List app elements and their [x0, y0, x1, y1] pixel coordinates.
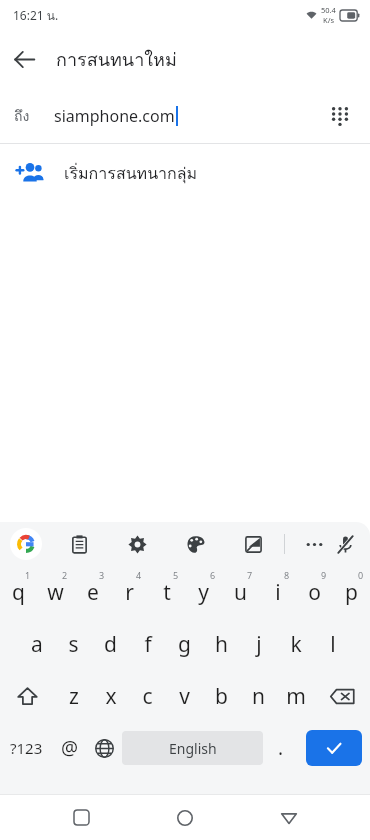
button[interactable]: g [166, 618, 203, 670]
button[interactable]: . [263, 722, 298, 774]
staticText: x [105, 682, 117, 711]
button[interactable]: n [240, 670, 277, 722]
staticText: t [163, 578, 171, 607]
button[interactable]: p [333, 566, 370, 618]
staticText: 2 [62, 569, 68, 581]
button[interactable]: Home [162, 795, 208, 840]
staticText: siamphone.com [54, 105, 175, 127]
staticText: n [252, 682, 265, 711]
staticText: m [286, 682, 306, 711]
button[interactable]: Clipboard [64, 529, 94, 559]
button[interactable]: v [166, 670, 203, 722]
button[interactable]: a [18, 618, 55, 670]
button[interactable]: t [148, 566, 185, 618]
staticText: u [234, 578, 247, 607]
button[interactable]: k [277, 618, 314, 670]
button[interactable]: e [74, 566, 111, 618]
button[interactable]: @ [52, 722, 87, 774]
staticText: v [179, 682, 190, 711]
button[interactable]: i [259, 566, 296, 618]
staticText: a [31, 630, 43, 659]
button[interactable]: Done [306, 730, 362, 766]
staticText: o [308, 578, 321, 607]
staticText: f [144, 630, 152, 659]
staticText: e [87, 578, 99, 607]
staticText: ถึง [14, 105, 30, 127]
button[interactable]: s [55, 618, 92, 670]
staticText: 3 [99, 569, 105, 581]
staticText: 5 [173, 569, 179, 581]
staticText: ?123 [10, 738, 43, 758]
staticText: 4 [136, 569, 142, 581]
staticText: l [330, 630, 336, 659]
staticText: s [68, 630, 79, 659]
button[interactable]: b [203, 670, 240, 722]
staticText: . [278, 735, 284, 761]
staticText: K/s [323, 15, 335, 25]
staticText: h [215, 630, 228, 659]
staticText: y [198, 578, 209, 607]
button[interactable]: h [203, 618, 240, 670]
button[interactable]: d [92, 618, 129, 670]
button[interactable]: Recent apps [58, 795, 104, 840]
button[interactable]: o [296, 566, 333, 618]
button[interactable]: q [0, 566, 37, 618]
staticText: z [69, 682, 79, 711]
staticText: j [256, 630, 262, 659]
button[interactable]: Change language [87, 722, 122, 774]
button[interactable]: j [240, 618, 277, 670]
button[interactable]: w [37, 566, 74, 618]
staticText: 50.4 [321, 5, 336, 15]
button[interactable]: เริ่มการสนทนากลุ่ม [0, 144, 370, 202]
button[interactable]: Shift [0, 670, 55, 722]
button[interactable]: y [185, 566, 222, 618]
button[interactable]: z [55, 670, 92, 722]
staticText: @ [61, 735, 79, 761]
button[interactable]: c [129, 670, 166, 722]
staticText: p [345, 578, 358, 607]
staticText: r [125, 578, 134, 607]
staticText: b [215, 682, 228, 711]
staticText: d [104, 630, 117, 659]
staticText: i [275, 578, 281, 607]
staticText: เริ่มการสนทนากลุ่ม [64, 161, 198, 186]
staticText: 7 [247, 569, 253, 581]
button[interactable]: x [92, 670, 129, 722]
button[interactable]: Dialpad [316, 92, 364, 140]
button[interactable]: More options [299, 529, 329, 559]
button[interactable]: ?123 [0, 722, 52, 774]
button[interactable]: f [129, 618, 166, 670]
button[interactable]: Settings [122, 529, 152, 559]
staticText: 0 [358, 569, 364, 581]
staticText: q [12, 578, 25, 607]
staticText: w [47, 578, 64, 607]
staticText: 1 [25, 569, 31, 581]
button[interactable]: Theme [180, 529, 210, 559]
staticText: 16:21 น. [13, 6, 59, 25]
button[interactable]: r [111, 566, 148, 618]
staticText: 6 [210, 569, 216, 581]
button[interactable]: Google [10, 528, 42, 560]
button[interactable]: Resize [238, 529, 268, 559]
button[interactable]: Backspace [314, 670, 370, 722]
button[interactable]: u [222, 566, 259, 618]
staticText: c [142, 682, 153, 711]
button[interactable]: English [122, 731, 263, 765]
staticText: English [169, 739, 217, 758]
button[interactable]: Mute microphone [330, 529, 360, 559]
staticText: 9 [321, 569, 327, 581]
staticText: การสนทนาใหม่ [56, 45, 177, 74]
button[interactable]: m [277, 670, 314, 722]
staticText: g [178, 630, 191, 659]
staticText: k [290, 630, 302, 659]
button[interactable]: Back [266, 795, 312, 840]
staticText: 8 [284, 569, 290, 581]
button[interactable]: Back [0, 35, 48, 83]
button[interactable]: l [314, 618, 351, 670]
